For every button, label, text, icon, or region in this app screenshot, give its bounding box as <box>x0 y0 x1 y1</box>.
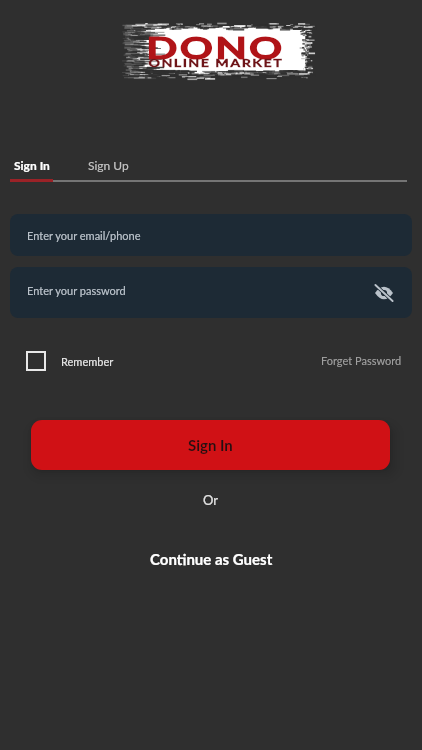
button[interactable]: Continue as Guest <box>150 550 273 568</box>
button[interactable]: Sign In <box>31 420 390 470</box>
staticText: Sign In <box>188 436 233 454</box>
staticText: DONO <box>146 29 285 65</box>
button[interactable]: Forget Password <box>321 354 402 367</box>
button[interactable]: Show password <box>368 277 400 309</box>
staticText: Or <box>203 492 219 508</box>
staticText: Sign Up <box>88 158 129 172</box>
staticText: Continue as Guest <box>150 550 273 568</box>
staticText: Enter your password <box>27 284 126 297</box>
staticText: ONLINE MARKET <box>148 56 284 69</box>
button[interactable]: Remember <box>26 351 114 371</box>
button[interactable]: Sign In <box>14 158 50 172</box>
button[interactable]: Enter your email/phone <box>10 214 412 256</box>
staticText: Enter your email/phone <box>27 229 141 242</box>
staticText: Sign In <box>14 158 50 172</box>
staticText: Forget Password <box>321 354 402 367</box>
button[interactable]: Sign Up <box>88 158 129 172</box>
button[interactable]: Enter your password <box>10 267 412 318</box>
staticText: Remember <box>61 355 114 368</box>
